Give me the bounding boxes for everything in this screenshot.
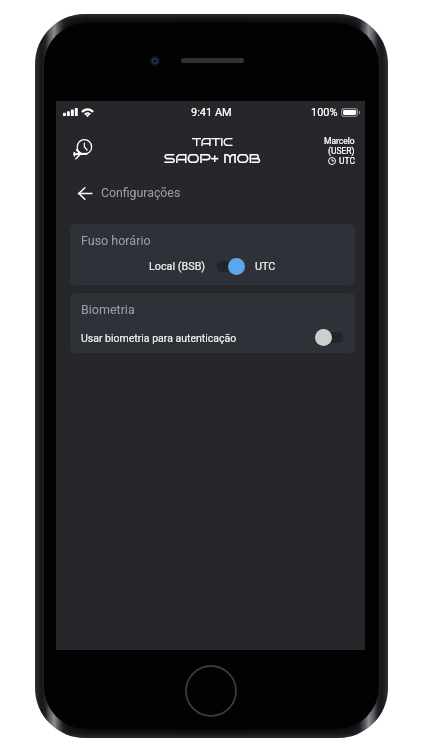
button[interactable]: Toggle off — [315, 329, 343, 346]
staticText: UTC — [255, 260, 276, 273]
button[interactable]: Toggle on — [217, 258, 245, 275]
staticText: 100% — [311, 106, 338, 119]
staticText: Fuso horário — [81, 233, 151, 248]
staticText: Usar biometria para autenticação — [81, 332, 237, 344]
staticText: SAOP+ MOB — [164, 151, 261, 166]
staticText: Configurações — [101, 186, 181, 200]
staticText: 9:41 AM — [191, 106, 232, 119]
staticText: Marcelo — [324, 136, 355, 146]
staticText: Biometria — [81, 302, 135, 317]
staticText: TATIC — [192, 136, 233, 149]
button[interactable]: Back — [75, 183, 95, 203]
staticText: (USER) — [328, 146, 355, 156]
staticText: Local (BSB) — [149, 260, 206, 273]
button[interactable]: Flight time — [67, 134, 96, 163]
staticText: UTC — [339, 156, 355, 166]
